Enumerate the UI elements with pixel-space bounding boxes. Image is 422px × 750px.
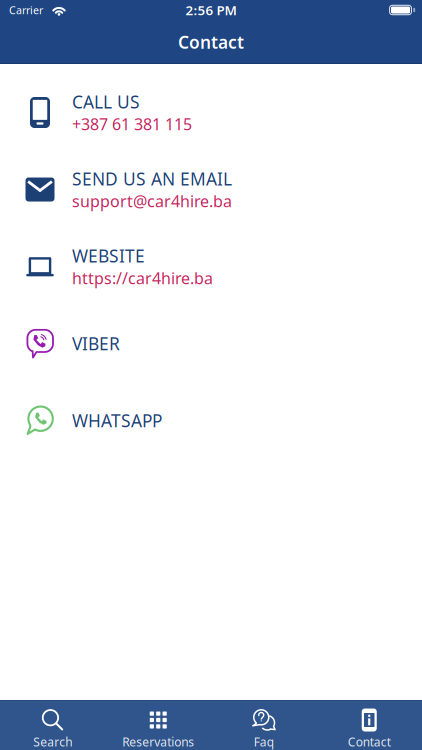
staticText: Contact: [178, 30, 244, 53]
staticText: Search: [33, 734, 72, 750]
staticText: Contact: [348, 734, 391, 750]
staticText: SEND US AN EMAIL: [72, 167, 232, 190]
button[interactable]: VIBER: [0, 305, 422, 382]
button[interactable]: WEBSITE: [0, 228, 422, 305]
staticText: 2:56 PM: [185, 1, 236, 19]
staticText: +387 61 381 115: [72, 113, 192, 135]
button[interactable]: Reservations: [105, 700, 211, 750]
staticText: support@car4hire.ba: [72, 190, 232, 212]
staticText: Faq: [254, 734, 274, 750]
staticText: WEBSITE: [72, 244, 145, 267]
button[interactable]: Faq: [211, 700, 316, 750]
staticText: Reservations: [122, 734, 194, 750]
staticText: Carrier: [9, 3, 43, 17]
button[interactable]: Contact: [316, 700, 422, 750]
staticText: CALL US: [72, 90, 140, 113]
button[interactable]: CALL US: [0, 74, 422, 151]
button[interactable]: Search: [0, 700, 105, 750]
button[interactable]: WHATSAPP: [0, 382, 422, 459]
staticText: VIBER: [72, 332, 120, 355]
button[interactable]: SEND US AN EMAIL: [0, 151, 422, 228]
staticText: WHATSAPP: [72, 409, 162, 432]
staticText: https://car4hire.ba: [72, 267, 213, 289]
